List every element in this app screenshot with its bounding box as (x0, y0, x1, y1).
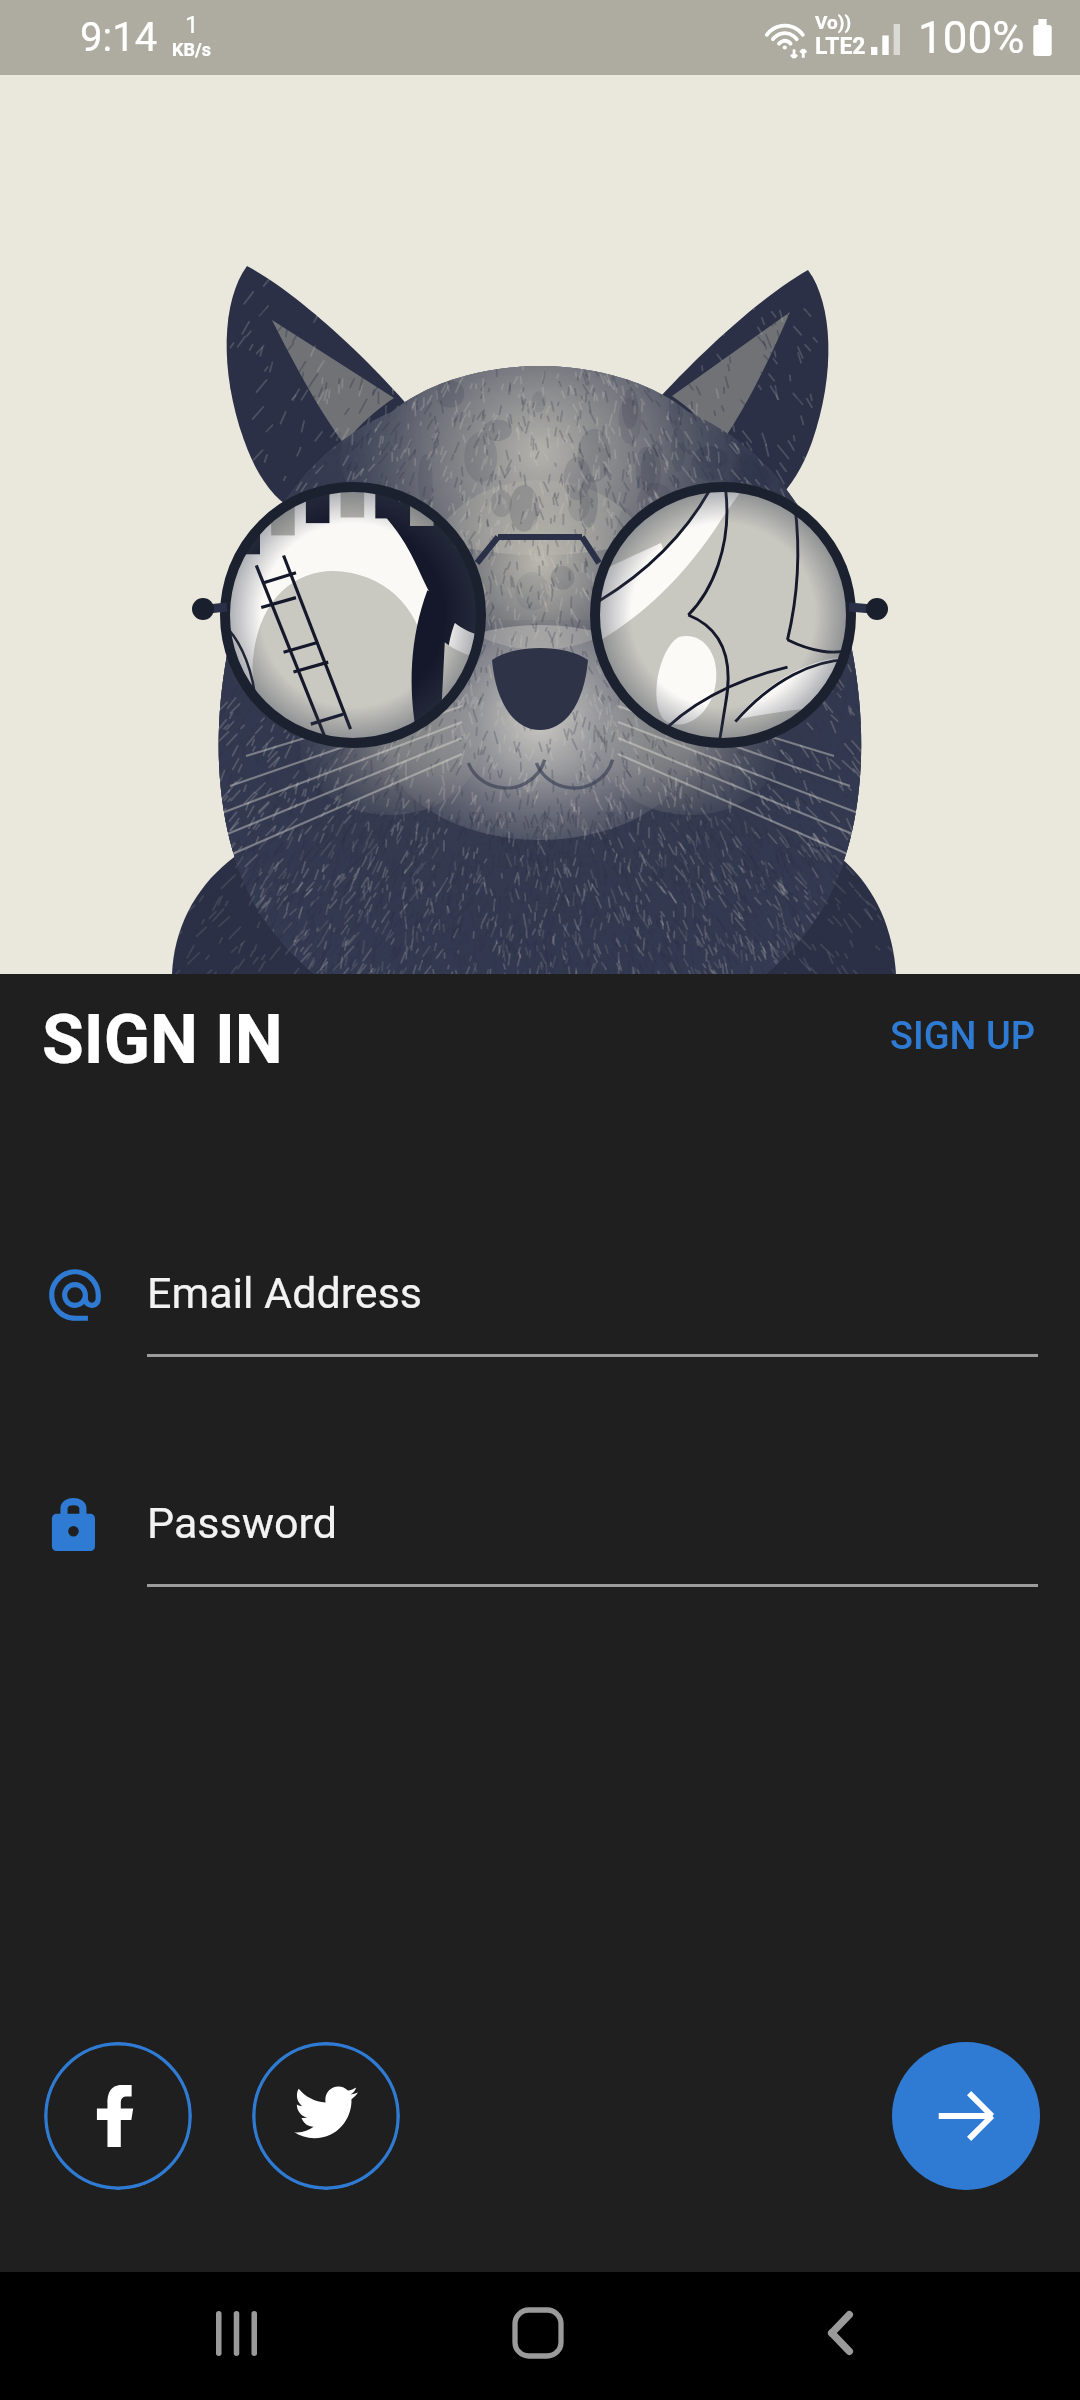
button[interactable]: Email Address (0, 1256, 1080, 1360)
button[interactable]: SIGN UP (890, 1014, 1036, 1059)
button[interactable]: Recent apps (146, 2272, 326, 2400)
button[interactable]: Home (448, 2272, 628, 2400)
button[interactable]: Sign in with Facebook (44, 2042, 192, 2190)
staticText: 9:14 (80, 14, 158, 61)
staticText: 1 (185, 11, 199, 39)
staticText: LTE2 (815, 33, 866, 60)
button[interactable]: Password (0, 1486, 1080, 1590)
staticText: 100% (918, 12, 1025, 64)
staticText: Password (147, 1498, 337, 1548)
staticText: SIGN IN (42, 1000, 283, 1080)
button[interactable]: Continue (892, 2042, 1040, 2190)
staticText: SIGN UP (890, 1014, 1036, 1059)
staticText: Vo)) (815, 11, 852, 33)
button[interactable]: Sign in with Twitter (252, 2042, 400, 2190)
button[interactable]: SIGN IN (42, 1000, 283, 1080)
button[interactable]: Back (750, 2272, 930, 2400)
staticText: Email Address (147, 1268, 423, 1318)
staticText: KB/s (172, 39, 211, 60)
